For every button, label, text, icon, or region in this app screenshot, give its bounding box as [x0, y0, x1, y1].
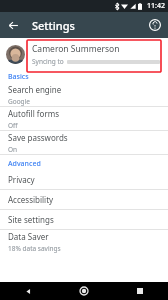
- staticText: 18% data savings: [8, 244, 61, 253]
- staticText: Off: [8, 121, 18, 130]
- button[interactable]: Back: [0, 282, 56, 300]
- button[interactable]: Data Saver: [0, 230, 168, 253]
- staticText: Google: [8, 97, 30, 106]
- button[interactable]: Search engine: [0, 83, 168, 106]
- staticText: Search engine: [8, 84, 62, 95]
- staticText: On: [8, 145, 18, 154]
- staticText: Data Saver: [8, 231, 49, 242]
- button[interactable]: Privacy: [0, 170, 168, 189]
- button[interactable]: Home: [56, 282, 112, 300]
- staticText: Cameron Summerson: [32, 43, 120, 55]
- button[interactable]: Cameron Summerson: [0, 38, 168, 70]
- button[interactable]: Accessibility: [0, 190, 168, 209]
- button[interactable]: Recent apps: [112, 282, 168, 300]
- staticText: Site settings: [8, 214, 54, 225]
- button[interactable]: Save passwords: [0, 131, 168, 154]
- staticText: Settings: [32, 18, 75, 33]
- staticText: Accessibility: [8, 194, 54, 205]
- staticText: Syncing to: [32, 57, 64, 66]
- button[interactable]: Back: [0, 12, 26, 38]
- button[interactable]: Help: [142, 12, 168, 38]
- staticText: Advanced: [8, 159, 41, 169]
- staticText: 11:42: [147, 1, 165, 11]
- staticText: Privacy: [8, 174, 35, 185]
- staticText: Basics: [8, 72, 29, 82]
- button[interactable]: Autofill forms: [0, 107, 168, 130]
- button[interactable]: Site settings: [0, 210, 168, 229]
- staticText: Save passwords: [8, 132, 68, 143]
- staticText: Autofill forms: [8, 108, 60, 119]
